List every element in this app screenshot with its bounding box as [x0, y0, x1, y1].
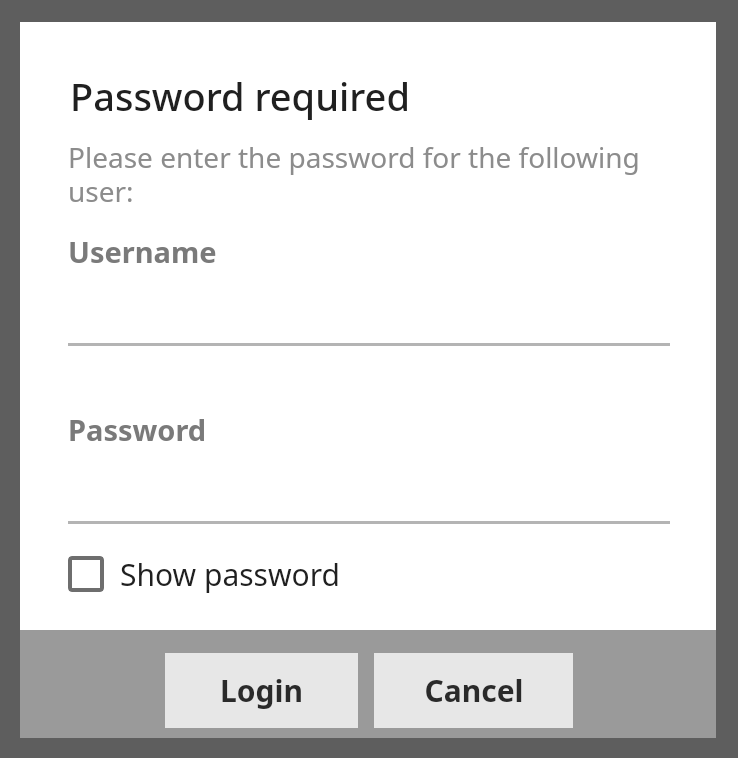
button[interactable]: Show password: [68, 546, 340, 602]
staticText: Please enter the password for the follow…: [68, 138, 648, 210]
button[interactable]: Login: [165, 653, 358, 728]
staticText: Password required: [70, 70, 410, 122]
button[interactable]: Username field: [68, 280, 670, 346]
staticText: Password: [68, 410, 207, 449]
staticText: Cancel: [424, 670, 524, 711]
button[interactable]: Cancel: [374, 653, 573, 728]
staticText: Show password: [120, 554, 340, 595]
staticText: Username: [68, 232, 217, 271]
staticText: Login: [220, 670, 303, 711]
button[interactable]: Password field: [68, 458, 670, 524]
